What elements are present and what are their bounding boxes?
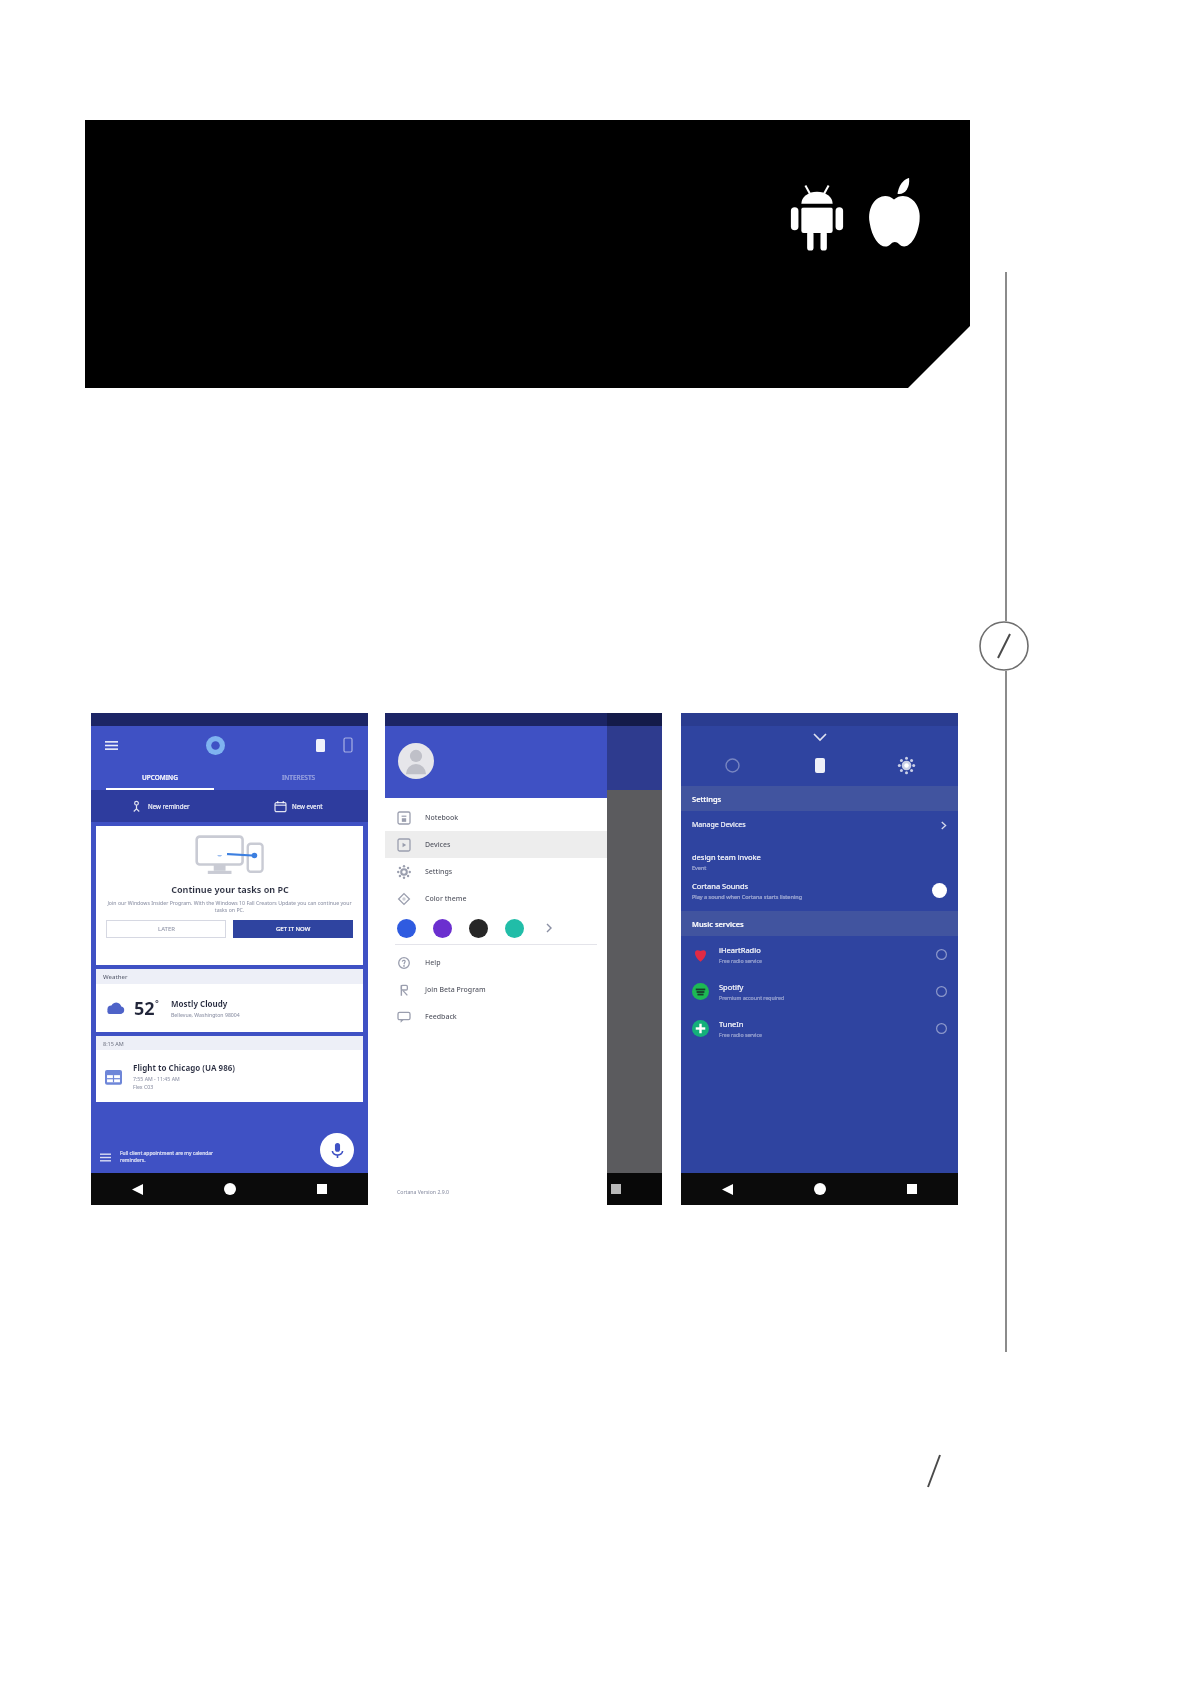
button[interactable]: iHeartRadio xyxy=(681,936,958,973)
button[interactable]: Theme colour xyxy=(469,919,488,938)
button[interactable]: Cortana xyxy=(202,732,228,758)
staticText: Notebook xyxy=(425,813,459,823)
button[interactable]: INTERESTS xyxy=(229,764,368,790)
staticText: INTERESTS xyxy=(282,773,316,782)
button[interactable]: Recents xyxy=(276,1173,368,1205)
staticText: Cortana Version 2.9.0 xyxy=(397,1188,450,1195)
staticText: Flex C03 xyxy=(133,1083,154,1090)
button[interactable]: More colours xyxy=(541,920,557,936)
button[interactable]: Back xyxy=(385,1173,478,1205)
staticText: 8:15 AM xyxy=(103,1040,124,1047)
button[interactable]: Profile xyxy=(398,743,434,779)
button[interactable]: Speaker xyxy=(338,735,358,755)
staticText: Event xyxy=(692,864,707,871)
staticText: iHeartRadio xyxy=(719,945,761,955)
button[interactable]: 8:15 AM xyxy=(96,1036,363,1102)
button[interactable]: Manage Devices xyxy=(681,811,958,839)
button[interactable]: Recents xyxy=(570,1173,662,1205)
button[interactable]: Notebook xyxy=(385,804,607,831)
button[interactable]: Devices xyxy=(776,748,863,782)
button[interactable]: design team invoke xyxy=(681,847,958,876)
staticText: Flight to Chicago (UA 986) xyxy=(133,1062,236,1073)
staticText: Settings xyxy=(425,867,453,877)
button[interactable]: Home xyxy=(689,748,776,782)
button[interactable]: Spotify xyxy=(681,973,958,1010)
staticText: Free radio service xyxy=(719,1031,762,1038)
staticText: Music services xyxy=(692,919,744,929)
staticText: Cortana Sounds xyxy=(692,881,749,891)
staticText: Devices xyxy=(425,840,451,850)
button[interactable]: Continue your tasks on PC xyxy=(96,826,363,965)
staticText: LATER xyxy=(158,925,175,933)
staticText: GET IT NOW xyxy=(276,925,311,933)
button[interactable]: Device xyxy=(310,735,330,755)
button[interactable]: LATER xyxy=(106,920,226,938)
staticText: Free radio service xyxy=(719,957,762,964)
button[interactable]: Back xyxy=(681,1173,774,1205)
staticText: Play a sound when Cortana starts listeni… xyxy=(692,893,803,900)
staticText: UPCOMING xyxy=(142,773,178,782)
button[interactable]: Theme colour xyxy=(433,919,452,938)
button[interactable]: Weather xyxy=(96,969,363,1032)
staticText: Spotify xyxy=(719,982,744,992)
button[interactable]: Back xyxy=(91,1173,184,1205)
staticText: Premium account required xyxy=(719,994,785,1001)
staticText: Bellevue, Washington 98004 xyxy=(171,1011,240,1018)
staticText: Join Beta Program xyxy=(425,985,486,995)
button[interactable]: Collapse xyxy=(810,727,830,747)
staticText: Continue your tasks on PC xyxy=(171,883,289,895)
staticText: Feedback xyxy=(425,1012,457,1022)
button[interactable]: Cortana Sounds xyxy=(681,876,958,905)
button[interactable]: Feedback xyxy=(385,1003,607,1030)
staticText: Manage Devices xyxy=(692,820,746,830)
staticText: Full client appointment are my calendar … xyxy=(120,1150,214,1164)
button[interactable]: Help xyxy=(385,949,607,976)
staticText: design team invoke xyxy=(692,852,761,862)
button[interactable]: Home xyxy=(774,1173,866,1205)
button[interactable]: Menu xyxy=(101,735,121,755)
button[interactable]: Settings xyxy=(385,858,607,885)
button[interactable]: Microphone xyxy=(320,1133,354,1167)
button[interactable]: UPCOMING xyxy=(91,764,229,790)
button[interactable]: New event xyxy=(229,790,368,822)
staticText: Join our Windows Insider Program. With t… xyxy=(106,899,353,913)
staticText: 7:55 AM - 11:45 AM xyxy=(133,1075,180,1082)
staticText: TuneIn xyxy=(719,1019,744,1029)
button[interactable]: Theme colour xyxy=(397,919,416,938)
button[interactable]: Color theme xyxy=(385,885,607,912)
staticText: New event xyxy=(292,802,323,810)
button[interactable]: Devices xyxy=(385,831,607,858)
staticText: Weather xyxy=(103,973,128,981)
staticText: Help xyxy=(425,958,441,968)
button[interactable]: Recents xyxy=(866,1173,958,1205)
button[interactable]: Theme colour xyxy=(505,919,524,938)
button[interactable]: Full client appointment are my calendar … xyxy=(100,1141,359,1173)
button[interactable]: TuneIn xyxy=(681,1010,958,1047)
button[interactable]: New reminder xyxy=(91,790,229,822)
other: Apple xyxy=(865,178,923,250)
staticText: New reminder xyxy=(148,802,190,810)
staticText: ° xyxy=(155,996,159,1008)
button[interactable]: Join Beta Program xyxy=(385,976,607,1003)
staticText: Mostly Cloudy xyxy=(171,998,228,1009)
other: Android xyxy=(788,182,846,252)
staticText: Settings xyxy=(692,794,722,804)
button[interactable]: Settings xyxy=(863,748,950,782)
staticText: 52 xyxy=(134,996,155,1021)
staticText: Color theme xyxy=(425,894,467,904)
button[interactable]: GET IT NOW xyxy=(233,920,353,938)
button[interactable]: Home xyxy=(184,1173,276,1205)
